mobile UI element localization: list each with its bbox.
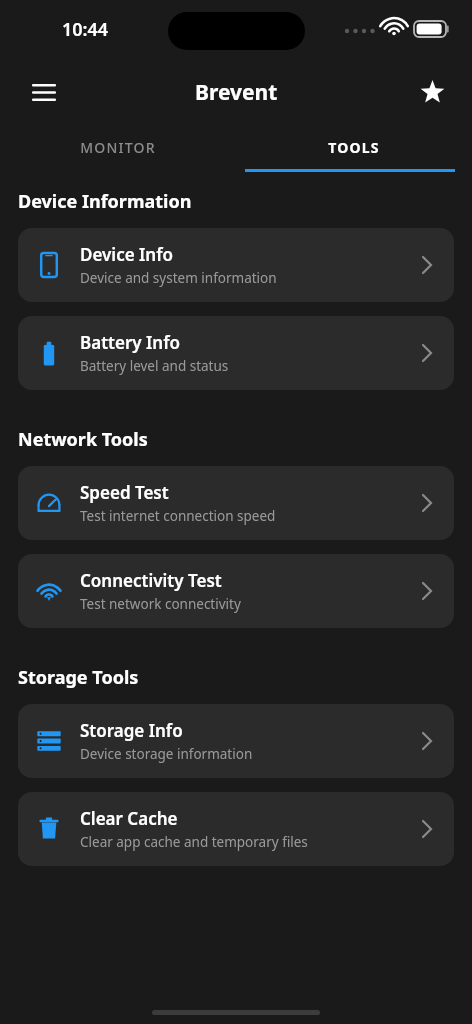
button[interactable]: Battery Info — [18, 316, 454, 390]
button[interactable]: Connectivity Test — [18, 554, 454, 628]
staticText: Device Information — [18, 189, 192, 214]
staticText: Test network connectivity — [80, 595, 241, 613]
staticText: Clear app cache and temporary files — [80, 833, 308, 851]
staticText: TOOLS — [328, 138, 380, 157]
staticText: Network Tools — [18, 427, 148, 452]
staticText: Storage Tools — [18, 665, 139, 690]
staticText: Battery Info — [80, 331, 180, 354]
button[interactable]: Speed Test — [18, 466, 454, 540]
button[interactable]: Storage Info — [18, 704, 454, 778]
staticText: Speed Test — [80, 481, 169, 504]
button[interactable]: TOOLS — [236, 122, 472, 172]
staticText: Clear Cache — [80, 807, 178, 830]
button[interactable]: Favorite — [410, 70, 454, 114]
button[interactable]: Menu — [22, 70, 66, 114]
staticText: Device and system information — [80, 269, 277, 287]
button[interactable]: Device Info — [18, 228, 454, 302]
staticText: Brevent — [195, 78, 278, 107]
staticText: Battery level and status — [80, 357, 229, 375]
button[interactable]: MONITOR — [0, 122, 236, 172]
staticText: Test internet connection speed — [80, 507, 276, 525]
staticText: Device Info — [80, 243, 173, 266]
staticText: MONITOR — [80, 138, 156, 157]
staticText: Connectivity Test — [80, 569, 222, 592]
staticText: 10:44 — [62, 17, 109, 42]
button[interactable]: Clear Cache — [18, 792, 454, 866]
staticText: Device storage information — [80, 745, 253, 763]
staticText: Storage Info — [80, 719, 183, 742]
